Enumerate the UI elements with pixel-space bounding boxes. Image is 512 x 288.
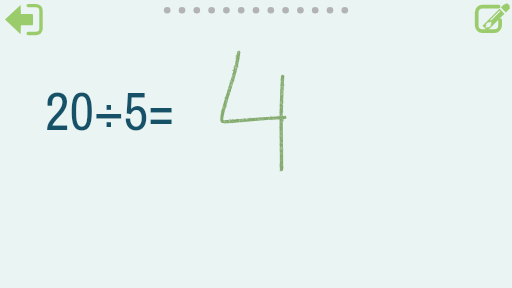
- button[interactable]: Back: [0, 0, 48, 44]
- staticText: 20÷5=: [45, 74, 174, 146]
- button[interactable]: Edit: [464, 0, 512, 44]
